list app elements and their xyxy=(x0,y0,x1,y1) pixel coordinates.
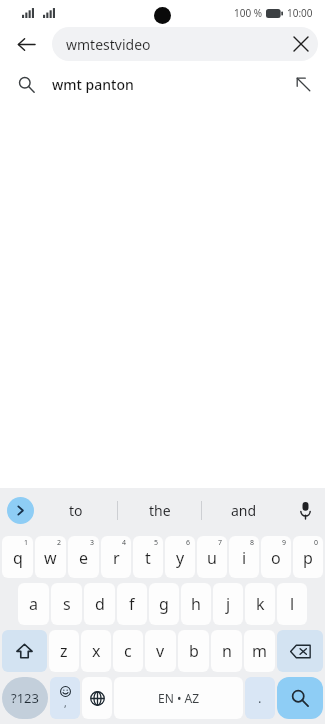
staticText: r xyxy=(113,547,120,569)
staticText: 3 xyxy=(90,538,95,548)
button[interactable]: d xyxy=(84,583,115,625)
staticText: y xyxy=(176,547,185,569)
button[interactable]: l xyxy=(277,583,307,625)
staticText: 8 xyxy=(250,538,255,548)
button[interactable]: ?123 xyxy=(2,677,48,719)
staticText: g xyxy=(159,593,169,615)
staticText: n xyxy=(222,640,232,662)
staticText: 10:00 xyxy=(287,6,313,20)
button[interactable]: s xyxy=(51,583,82,625)
staticText: 1 xyxy=(24,538,29,548)
button[interactable]: Search xyxy=(277,677,323,719)
staticText: and xyxy=(231,501,257,520)
button[interactable]: z xyxy=(49,630,79,672)
staticText: 9 xyxy=(282,538,287,548)
button[interactable]: the xyxy=(118,488,201,533)
staticText: 4 xyxy=(122,538,127,548)
staticText: 7 xyxy=(218,538,223,548)
button[interactable]: g xyxy=(149,583,179,625)
staticText: the xyxy=(149,501,171,520)
button[interactable]: q xyxy=(2,536,33,578)
button[interactable]: Shift xyxy=(2,630,47,672)
button[interactable]: Insert suggestion xyxy=(281,62,325,106)
staticText: wmt panton xyxy=(52,75,134,94)
button[interactable]: m xyxy=(244,630,275,672)
button[interactable]: h xyxy=(181,583,211,625)
button[interactable]: More suggestions xyxy=(7,497,34,524)
button[interactable]: u xyxy=(197,536,227,578)
button[interactable]: w xyxy=(35,536,66,578)
staticText: w xyxy=(44,547,57,569)
button[interactable]: EN • AZ xyxy=(114,677,243,719)
button[interactable]: Clear xyxy=(284,27,318,61)
staticText: v xyxy=(156,640,165,662)
staticText: 0 xyxy=(314,538,319,548)
staticText: , xyxy=(64,696,67,710)
staticText: p xyxy=(303,547,313,569)
staticText: t xyxy=(145,547,151,569)
staticText: s xyxy=(63,593,71,615)
button[interactable]: Backspace xyxy=(277,630,323,672)
staticText: . xyxy=(258,689,262,707)
button[interactable]: Emoji xyxy=(50,677,80,719)
button[interactable]: y xyxy=(165,536,195,578)
staticText: 2 xyxy=(57,538,62,548)
staticText: b xyxy=(189,640,199,662)
staticText: f xyxy=(129,593,135,615)
staticText: a xyxy=(29,593,38,615)
staticText: u xyxy=(207,547,217,569)
button[interactable]: to xyxy=(34,488,117,533)
staticText: o xyxy=(271,547,281,569)
staticText: h xyxy=(191,593,201,615)
button[interactable]: b xyxy=(178,630,209,672)
staticText: m xyxy=(252,640,267,662)
button[interactable]: k xyxy=(245,583,275,625)
staticText: ?123 xyxy=(11,689,39,707)
staticText: EN • AZ xyxy=(158,690,200,706)
button[interactable]: i xyxy=(229,536,259,578)
button[interactable]: c xyxy=(113,630,143,672)
button[interactable]: Voice input xyxy=(285,488,325,533)
staticText: to xyxy=(69,501,83,520)
button[interactable]: n xyxy=(211,630,242,672)
button[interactable]: x xyxy=(81,630,111,672)
button[interactable]: t xyxy=(133,536,163,578)
button[interactable]: Change language xyxy=(82,677,112,719)
staticText: i xyxy=(242,547,247,569)
button[interactable]: wmtestvideo xyxy=(52,27,318,61)
staticText: wmtestvideo xyxy=(66,35,151,54)
button[interactable]: r xyxy=(101,536,131,578)
button[interactable]: o xyxy=(261,536,291,578)
staticText: e xyxy=(79,547,89,569)
staticText: z xyxy=(60,640,68,662)
button[interactable]: f xyxy=(117,583,147,625)
staticText: d xyxy=(95,593,105,615)
button[interactable]: p xyxy=(293,536,323,578)
staticText: x xyxy=(92,640,101,662)
button[interactable]: a xyxy=(18,583,49,625)
button[interactable]: v xyxy=(145,630,176,672)
staticText: k xyxy=(256,593,265,615)
staticText: c xyxy=(124,640,132,662)
staticText: j xyxy=(226,593,231,615)
button[interactable]: e xyxy=(68,536,99,578)
staticText: 100 % xyxy=(234,6,263,20)
button[interactable]: and xyxy=(202,488,285,533)
button[interactable]: . xyxy=(245,677,275,719)
staticText: q xyxy=(13,547,23,569)
button[interactable]: wmt panton xyxy=(0,62,325,106)
staticText: 5 xyxy=(154,538,159,548)
button[interactable]: Back xyxy=(0,26,52,62)
staticText: l xyxy=(290,593,295,615)
button[interactable]: j xyxy=(213,583,243,625)
staticText: 6 xyxy=(186,538,191,548)
